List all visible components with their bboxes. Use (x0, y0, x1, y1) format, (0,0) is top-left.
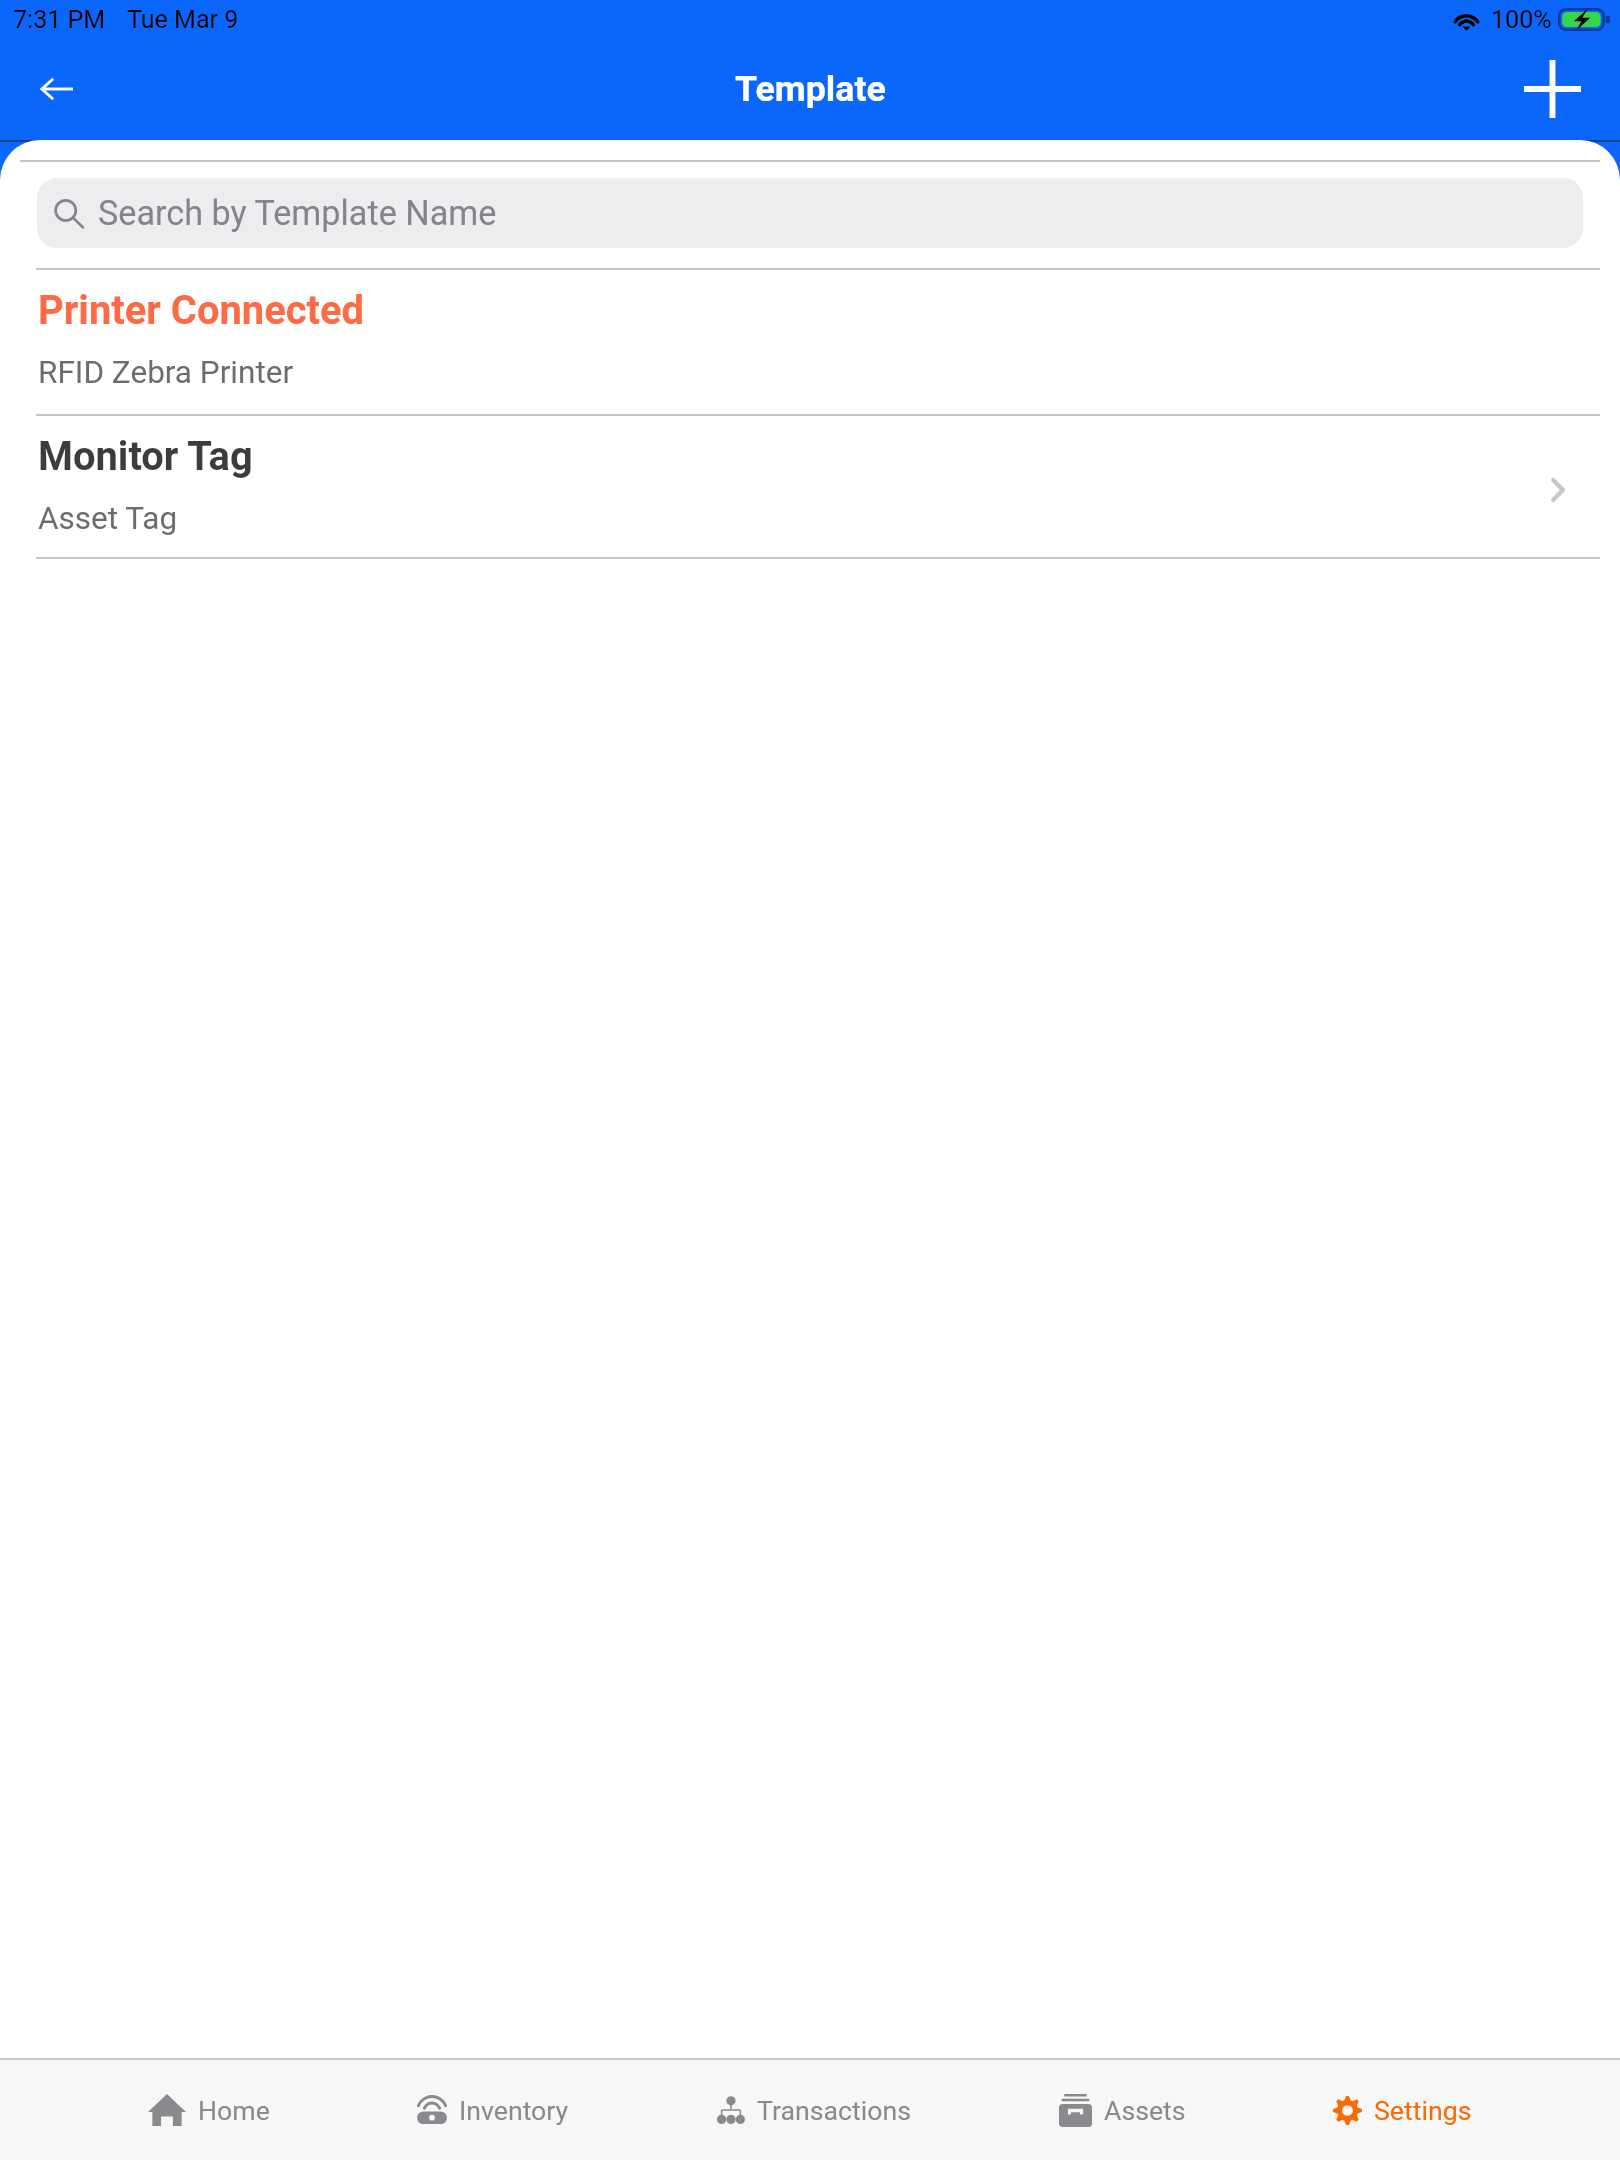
staticText: Transactions (757, 2095, 911, 2126)
button[interactable]: Search by Template Name (37, 178, 1583, 248)
button[interactable]: Inventory (417, 2060, 569, 2160)
button[interactable]: Add (1519, 56, 1585, 122)
staticText: 7:31 PM (13, 5, 106, 34)
button[interactable]: Monitor Tag (0, 416, 1620, 557)
staticText: Printer Connected (38, 287, 365, 334)
button[interactable]: Assets (1059, 2060, 1186, 2160)
staticText: Tue Mar 9 (127, 5, 239, 34)
staticText: Asset Tag (38, 500, 178, 537)
staticText: RFID Zebra Printer (38, 354, 294, 391)
staticText: Inventory (459, 2095, 569, 2126)
staticText: Monitor Tag (38, 433, 253, 480)
button[interactable]: Printer Connected (0, 270, 1620, 414)
button[interactable]: Back (28, 60, 85, 117)
staticText: 100% (1491, 5, 1552, 34)
staticText: Template (735, 68, 886, 110)
staticText: Home (198, 2095, 270, 2126)
staticText: Assets (1104, 2095, 1186, 2126)
button[interactable]: Settings (1333, 2060, 1472, 2160)
button[interactable]: Transactions (717, 2060, 911, 2160)
staticText: Settings (1374, 2095, 1472, 2126)
staticText: Search by Template Name (98, 193, 497, 233)
button[interactable]: Home (148, 2060, 270, 2160)
